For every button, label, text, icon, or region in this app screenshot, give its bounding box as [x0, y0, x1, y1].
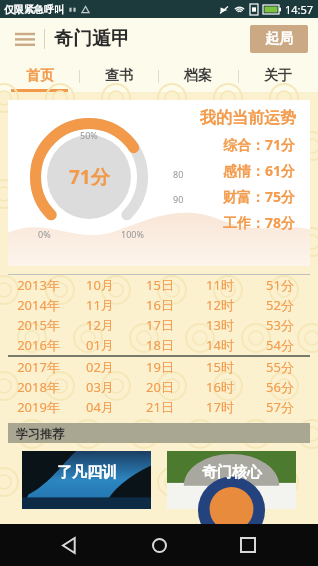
staticText: 20日	[146, 378, 174, 396]
button[interactable]: 2017年	[8, 357, 310, 377]
staticText: 财富：75分	[223, 187, 296, 206]
staticText: 档案	[184, 67, 212, 85]
button[interactable]: Recent apps	[229, 526, 267, 564]
staticText: 2018年	[17, 378, 60, 396]
staticText: 16日	[146, 296, 174, 314]
staticText: 52分	[266, 296, 294, 314]
staticText: 16时	[206, 378, 234, 396]
staticText: 50%	[80, 129, 98, 141]
staticText: 12时	[206, 296, 234, 314]
staticText: 17日	[146, 316, 174, 334]
staticText: 综合：71分	[223, 135, 296, 154]
staticText: 12月	[86, 316, 114, 334]
button[interactable]: 2013年	[8, 275, 310, 295]
staticText: 奇门遁甲	[54, 27, 130, 51]
staticText: 10月	[86, 276, 114, 294]
staticText: 了凡四训	[57, 463, 117, 482]
staticText: 感情：61分	[223, 161, 296, 180]
staticText: 查书	[105, 67, 133, 85]
staticText: 80	[173, 168, 184, 180]
staticText: 13时	[206, 316, 234, 334]
staticText: 57分	[266, 398, 294, 416]
button[interactable]: 起局	[250, 25, 308, 53]
staticText: 56分	[266, 378, 294, 396]
staticText: 首页	[26, 67, 54, 85]
staticText: 71分	[69, 164, 110, 190]
staticText: 0%	[38, 228, 51, 240]
staticText: 仅限紧急呼叫	[4, 3, 64, 16]
button[interactable]: Menu	[10, 24, 40, 54]
staticText: 19日	[146, 358, 174, 376]
staticText: 90	[173, 193, 184, 205]
staticText: 14时	[206, 336, 234, 354]
button[interactable]: 查书	[79, 60, 158, 92]
staticText: 51分	[266, 276, 294, 294]
staticText: 2014年	[17, 296, 60, 314]
staticText: 我的当前运势	[200, 108, 296, 128]
button[interactable]: 了凡四训	[22, 451, 151, 509]
staticText: 2015年	[17, 316, 60, 334]
staticText: 14:57	[285, 2, 314, 17]
staticText: 01月	[86, 336, 114, 354]
staticText: 起局	[265, 30, 293, 48]
staticText: 21日	[146, 398, 174, 416]
staticText: 03月	[86, 378, 114, 396]
staticText: 54分	[266, 336, 294, 354]
staticText: 11月	[86, 296, 114, 314]
button[interactable]: Home	[140, 526, 178, 564]
button[interactable]: 2016年	[8, 335, 310, 355]
staticText: 18日	[146, 336, 174, 354]
staticText: 15时	[206, 358, 234, 376]
staticText: 15日	[146, 276, 174, 294]
staticText: 17时	[206, 398, 234, 416]
staticText: 工作：78分	[223, 213, 296, 232]
staticText: 2017年	[17, 358, 60, 376]
staticText: 100%	[121, 228, 144, 240]
button[interactable]: 2019年	[8, 397, 310, 417]
staticText: 53分	[266, 316, 294, 334]
button[interactable]: 2018年	[8, 377, 310, 397]
button[interactable]: 关于	[238, 60, 318, 92]
staticText: 关于	[264, 67, 292, 85]
staticText: 11时	[206, 276, 234, 294]
staticText: 2019年	[17, 398, 60, 416]
staticText: 02月	[86, 358, 114, 376]
button[interactable]: 2014年	[8, 295, 310, 315]
button[interactable]: Back	[51, 526, 89, 564]
button[interactable]: 档案	[158, 60, 238, 92]
staticText: 学习推荐	[16, 426, 64, 441]
staticText: 2013年	[17, 276, 60, 294]
staticText: 2016年	[17, 336, 60, 354]
staticText: 04月	[86, 398, 114, 416]
staticText: 奇门核心	[202, 463, 262, 482]
button[interactable]: 奇门核心	[167, 451, 296, 509]
button[interactable]: 首页	[0, 60, 79, 92]
staticText: 55分	[266, 358, 294, 376]
button[interactable]: 2015年	[8, 315, 310, 335]
